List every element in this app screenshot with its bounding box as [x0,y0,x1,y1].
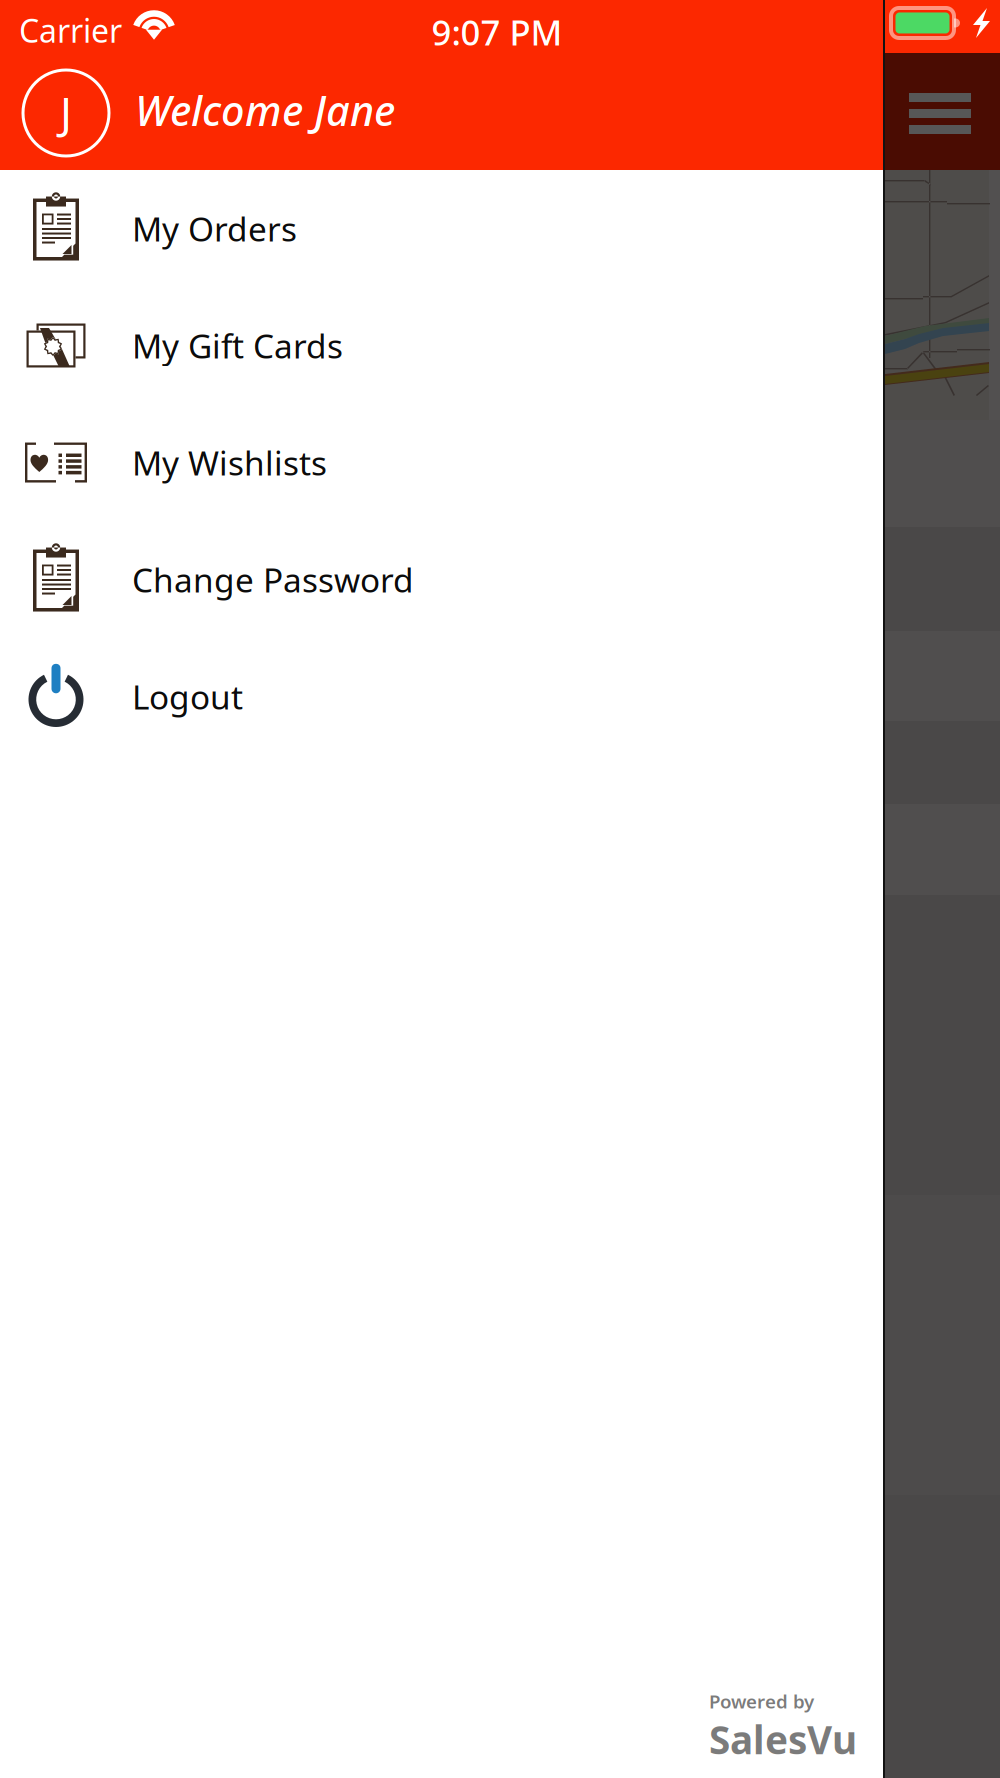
staticText: SalesVu [709,1714,857,1765]
button[interactable]: My Wishlists [0,404,883,521]
staticText: Logout [132,674,243,719]
staticText: 9:07 PM [431,9,562,55]
staticText: My Orders [132,206,297,251]
staticText: Welcome Jane [135,83,395,137]
button[interactable]: My Orders [0,170,883,287]
staticText: Change Password [132,557,414,602]
staticText: Carrier [19,9,122,51]
button[interactable]: Change Password [0,521,883,638]
staticText: Powered by [709,1689,814,1714]
button[interactable]: My Gift Cards [0,287,883,404]
staticText: My Wishlists [132,440,327,485]
button[interactable]: Menu [885,53,971,134]
staticText: J [60,83,72,141]
button[interactable]: Logout [0,638,883,755]
staticText: My Gift Cards [132,323,343,368]
